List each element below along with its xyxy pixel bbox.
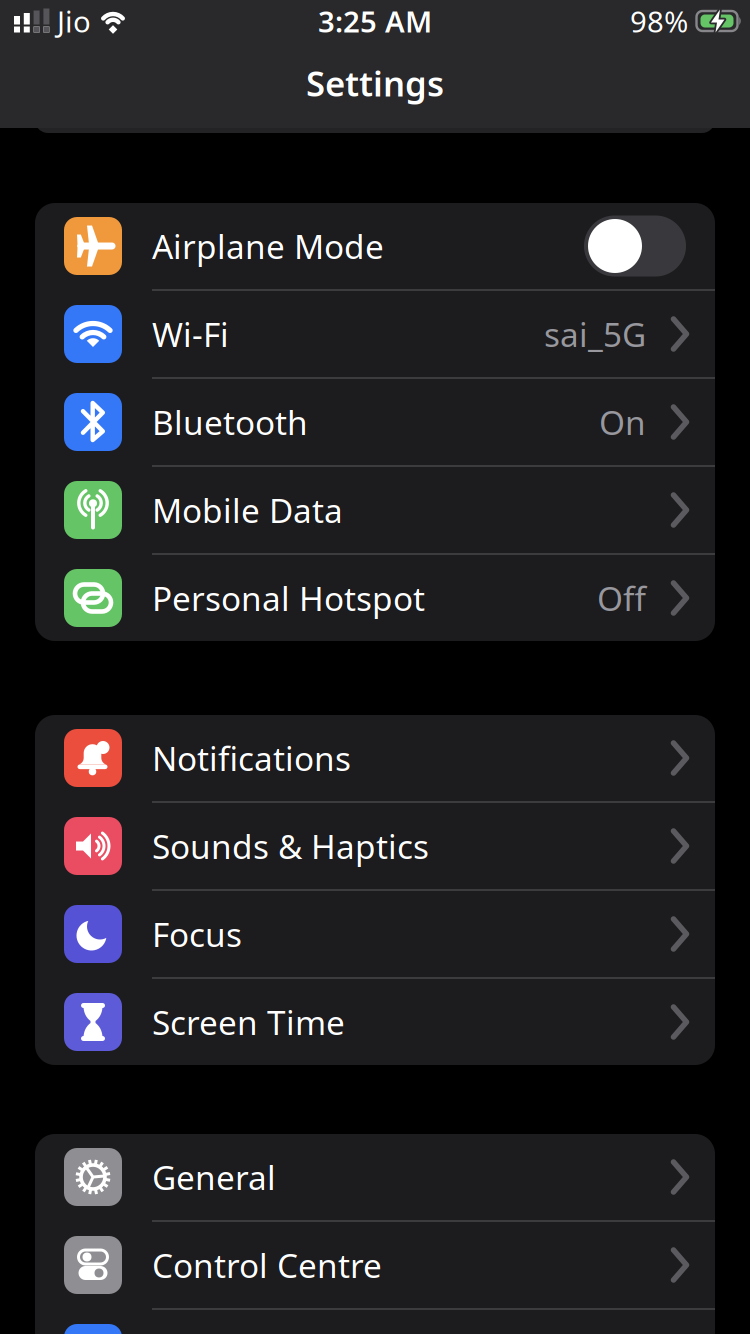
button[interactable]: Airplane Mode	[584, 215, 686, 276]
button[interactable]	[35, 1310, 715, 1334]
staticText: Airplane Mode	[152, 224, 384, 268]
staticText: sai_5G	[544, 312, 646, 356]
button[interactable]: Screen Time	[35, 979, 715, 1065]
button[interactable]: Control Centre	[35, 1222, 715, 1308]
staticText: Personal Hotspot	[152, 576, 425, 620]
button[interactable]: Wi-Fi	[35, 291, 715, 377]
staticText: Jio	[57, 1, 91, 40]
button[interactable]: Personal Hotspot	[35, 555, 715, 641]
staticText: Notifications	[152, 736, 351, 780]
staticText: General	[152, 1155, 276, 1199]
staticText: Bluetooth	[152, 400, 308, 444]
staticText: Off	[597, 576, 646, 620]
staticText: Control Centre	[152, 1243, 382, 1287]
button[interactable]: Notifications	[35, 715, 715, 801]
button[interactable]: Bluetooth	[35, 379, 715, 465]
staticText: Settings	[306, 60, 444, 106]
staticText: Mobile Data	[152, 488, 343, 532]
staticText: Wi-Fi	[152, 312, 229, 356]
staticText: Sounds & Haptics	[152, 824, 429, 868]
staticText: 98%	[630, 1, 688, 40]
staticText: Screen Time	[152, 1000, 345, 1044]
staticText: 3:25 AM	[318, 1, 432, 40]
button[interactable]: Mobile Data	[35, 467, 715, 553]
button[interactable]: Focus	[35, 891, 715, 977]
staticText: Focus	[152, 912, 242, 956]
staticText: On	[599, 400, 646, 444]
button[interactable]: General	[35, 1134, 715, 1220]
button[interactable]: Sounds & Haptics	[35, 803, 715, 889]
